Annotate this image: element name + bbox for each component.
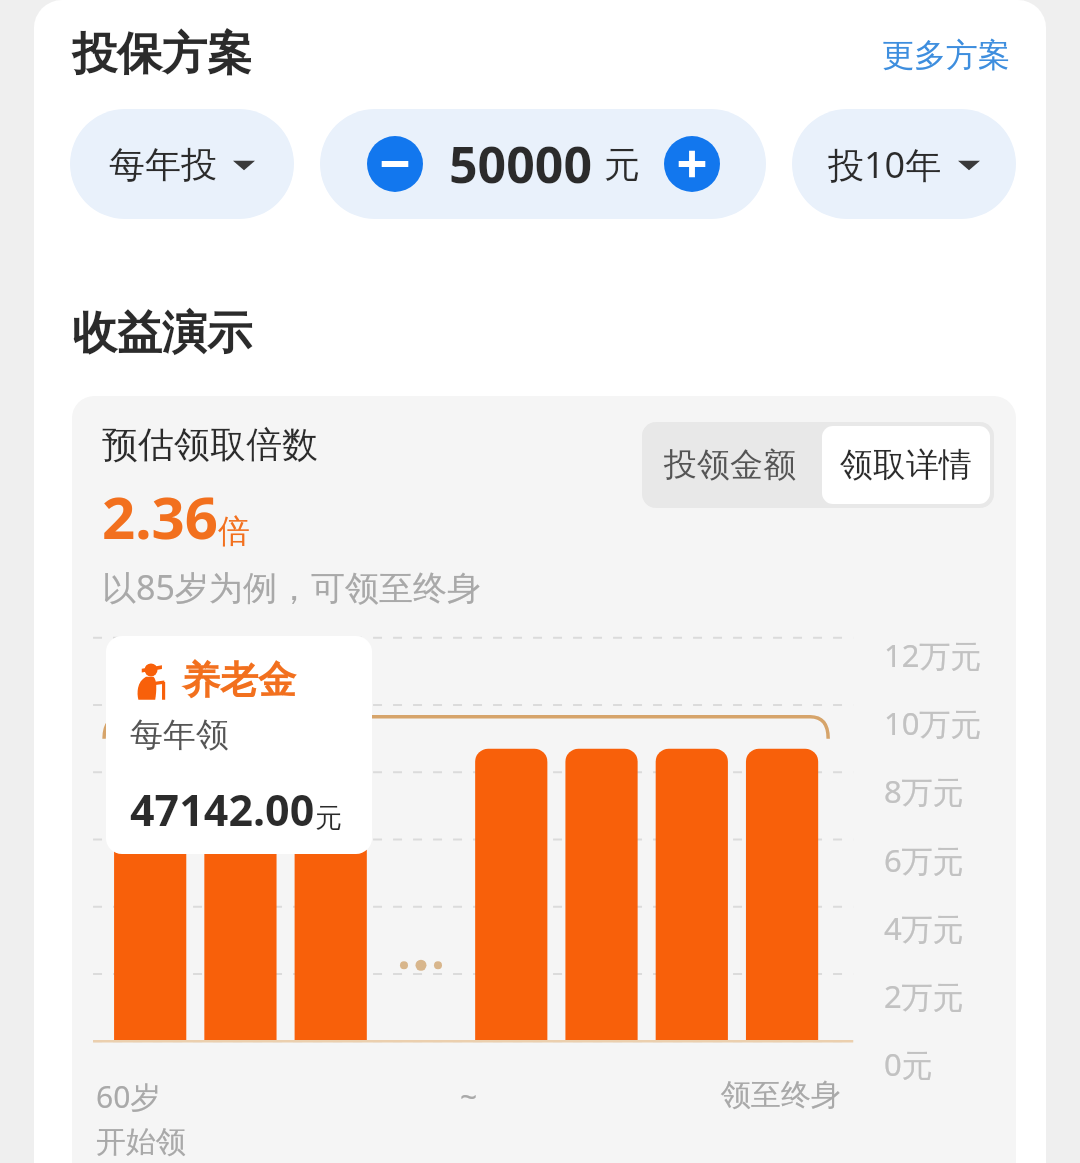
staticText: 4万元 [884,907,964,949]
staticText: 开始领 [96,1123,186,1161]
staticText: 每年投 [109,142,217,187]
staticText: 元 [315,801,342,835]
staticText: 每年领 [130,714,229,756]
button[interactable]: 投领金额 [642,422,818,508]
staticText: 投保方案 [72,26,252,83]
staticText: 10万元 [884,702,982,744]
staticText: 50000 [449,130,592,198]
staticText: 60岁 [96,1076,161,1117]
staticText: 领取详情 [840,444,972,486]
staticText: 养老金 [182,656,296,704]
button[interactable]: Decrease amount [367,136,423,192]
button[interactable]: 更多方案 [876,29,1016,81]
staticText: 以85岁为例，可领至终身 [102,564,481,610]
staticText: 2.36 [102,477,218,556]
staticText: 投10年 [828,140,942,189]
staticText: 6万元 [884,839,964,881]
button[interactable]: 领取详情 [822,426,990,504]
button[interactable]: 每年投 [70,109,294,219]
staticText: 47142.00 [130,780,315,839]
staticText: 投领金额 [664,444,796,486]
staticText: ~ [460,1076,478,1117]
staticText: 倍 [218,511,250,551]
button[interactable]: Increase amount [664,136,720,192]
staticText: 更多方案 [882,35,1010,75]
staticText: 领至终身 [721,1076,841,1114]
button[interactable]: 投10年 [792,109,1016,219]
staticText: 12万元 [884,634,982,676]
staticText: 8万元 [884,770,964,812]
staticText: 2万元 [884,975,964,1017]
staticText: 收益演示 [72,305,252,362]
staticText: 0元 [884,1043,933,1085]
staticText: 预估领取倍数 [102,422,318,467]
staticText: 元 [604,142,640,187]
